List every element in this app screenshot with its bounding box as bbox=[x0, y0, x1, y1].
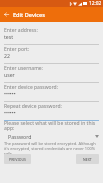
staticText: NEXT bbox=[83, 157, 92, 162]
staticText: test bbox=[4, 33, 14, 40]
staticText: PREVIOUS bbox=[9, 157, 26, 162]
staticText: Enter address: bbox=[4, 27, 38, 34]
staticText: The password will be stored encrypted. A… bbox=[4, 141, 99, 156]
staticText: Enter username: bbox=[4, 65, 43, 72]
staticText: user bbox=[4, 71, 15, 78]
staticText: Enter port: bbox=[4, 46, 30, 53]
staticText: •••••• bbox=[4, 90, 16, 97]
staticText: 22 bbox=[4, 52, 10, 59]
staticText: Password bbox=[8, 133, 32, 140]
button[interactable]: Password bbox=[4, 132, 99, 141]
staticText: Please select what will be stored in thi… bbox=[4, 120, 99, 132]
staticText: Enter device password: bbox=[4, 84, 59, 91]
staticText: Edit Devices bbox=[13, 11, 46, 19]
button[interactable]: PREVIOUS bbox=[4, 154, 31, 164]
button[interactable]: Back bbox=[0, 7, 13, 22]
button[interactable]: NEXT bbox=[76, 154, 99, 164]
staticText: •••••• bbox=[4, 109, 16, 116]
staticText: 12:02 bbox=[89, 0, 102, 7]
staticText: Repeat device password: bbox=[4, 103, 62, 110]
